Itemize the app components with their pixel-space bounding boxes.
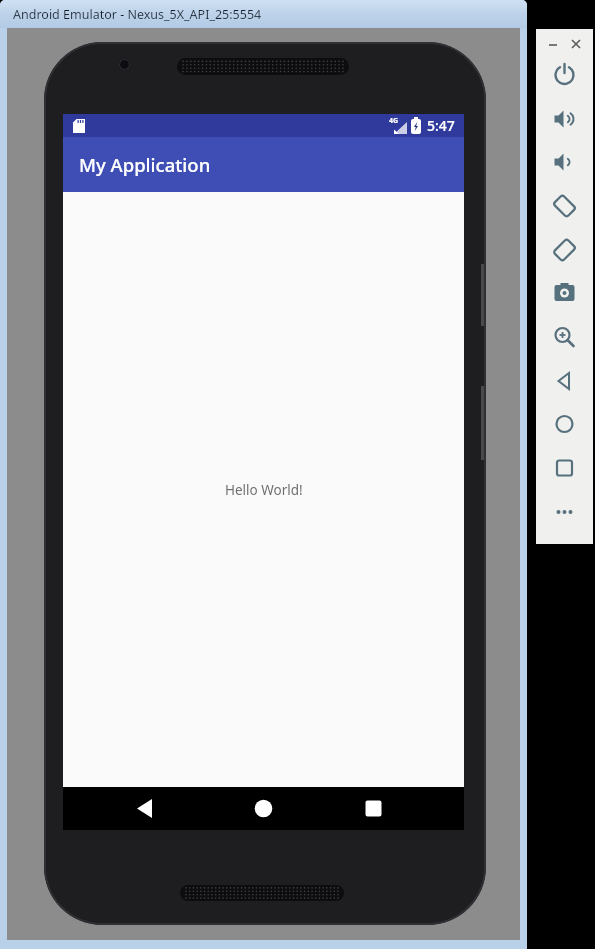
staticText: Hello World! [225, 481, 303, 499]
staticText: 4G [389, 116, 399, 126]
staticText: My Application [79, 152, 211, 177]
staticText: Android Emulator - Nexus_5X_API_25:5554 [13, 6, 262, 23]
staticText: 5:47 [427, 116, 455, 135]
